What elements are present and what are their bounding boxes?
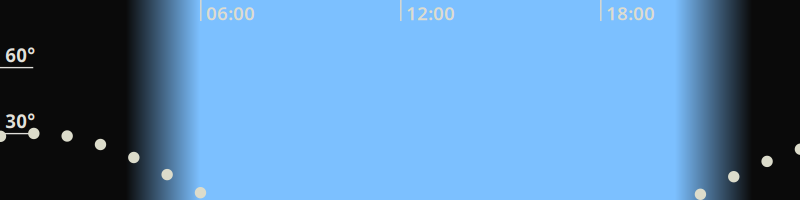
staticText: 60°: [5, 43, 35, 67]
staticText: 30°: [5, 109, 35, 133]
staticText: 12:00: [406, 1, 455, 25]
staticText: 06:00: [206, 1, 255, 25]
staticText: 18:00: [606, 1, 655, 25]
